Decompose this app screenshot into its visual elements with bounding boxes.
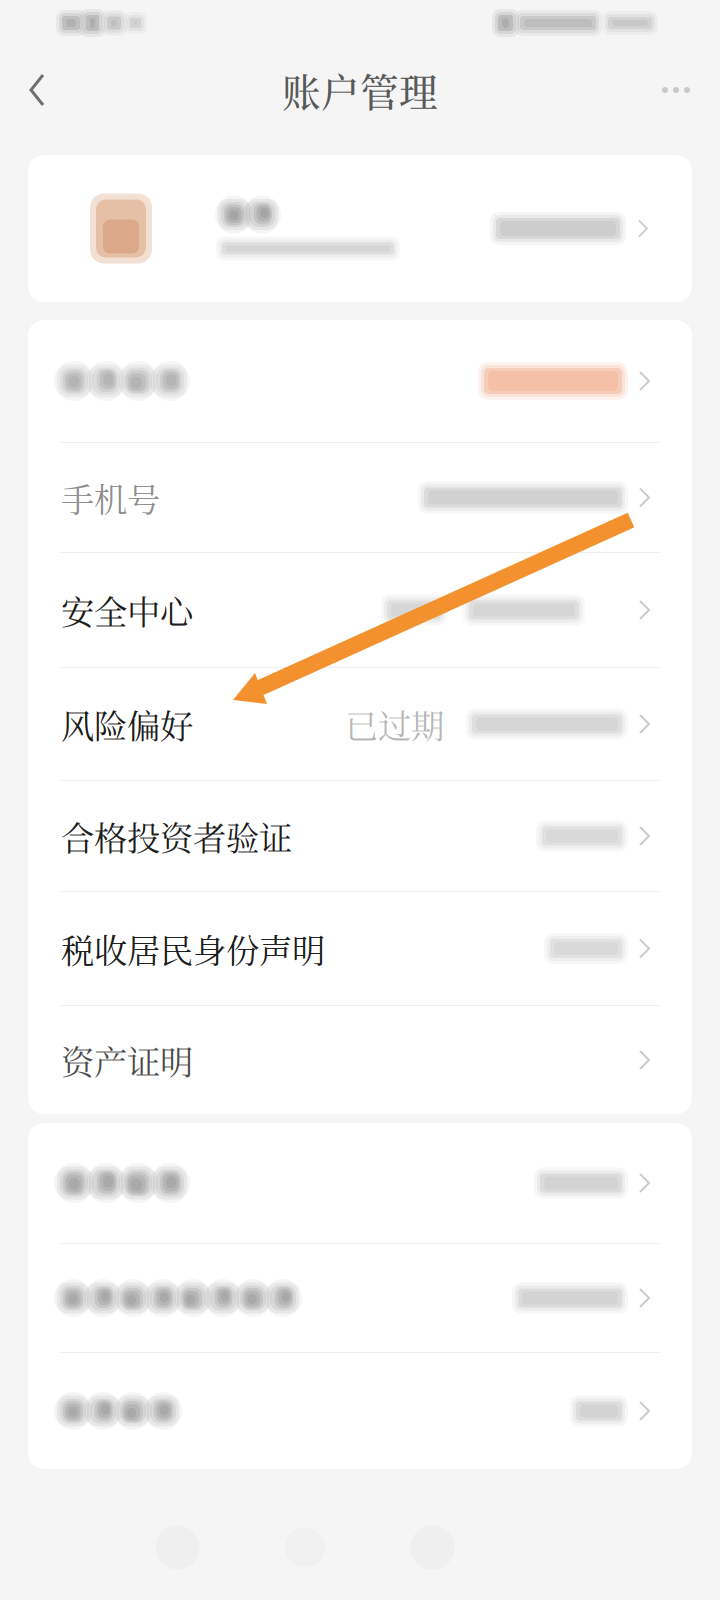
staticText: 税收居民身份声明 [61,925,325,972]
staticText: 已过期 [345,700,444,748]
button[interactable]: 合格投资者验证 [28,781,692,891]
button[interactable]: Back [0,46,66,134]
button[interactable] [28,1244,692,1352]
button[interactable]: 资产证明 [28,1006,692,1114]
staticText: 合格投资者验证 [61,812,292,860]
button[interactable] [28,320,692,442]
button[interactable] [28,1353,692,1469]
staticText: 手机号 [61,474,160,521]
button[interactable]: More options [640,46,720,134]
button[interactable] [28,1123,692,1243]
staticText: 资产证明 [61,1036,193,1084]
staticText: 安全中心 [61,586,193,634]
button[interactable]: 安全中心 [28,553,692,667]
button[interactable]: 手机号 [28,443,692,552]
button[interactable] [28,155,692,302]
button[interactable]: 风险偏好 [28,668,692,780]
staticText: 风险偏好 [61,700,193,748]
staticText: 账户管理 [282,62,438,118]
button[interactable]: 税收居民身份声明 [28,892,692,1005]
